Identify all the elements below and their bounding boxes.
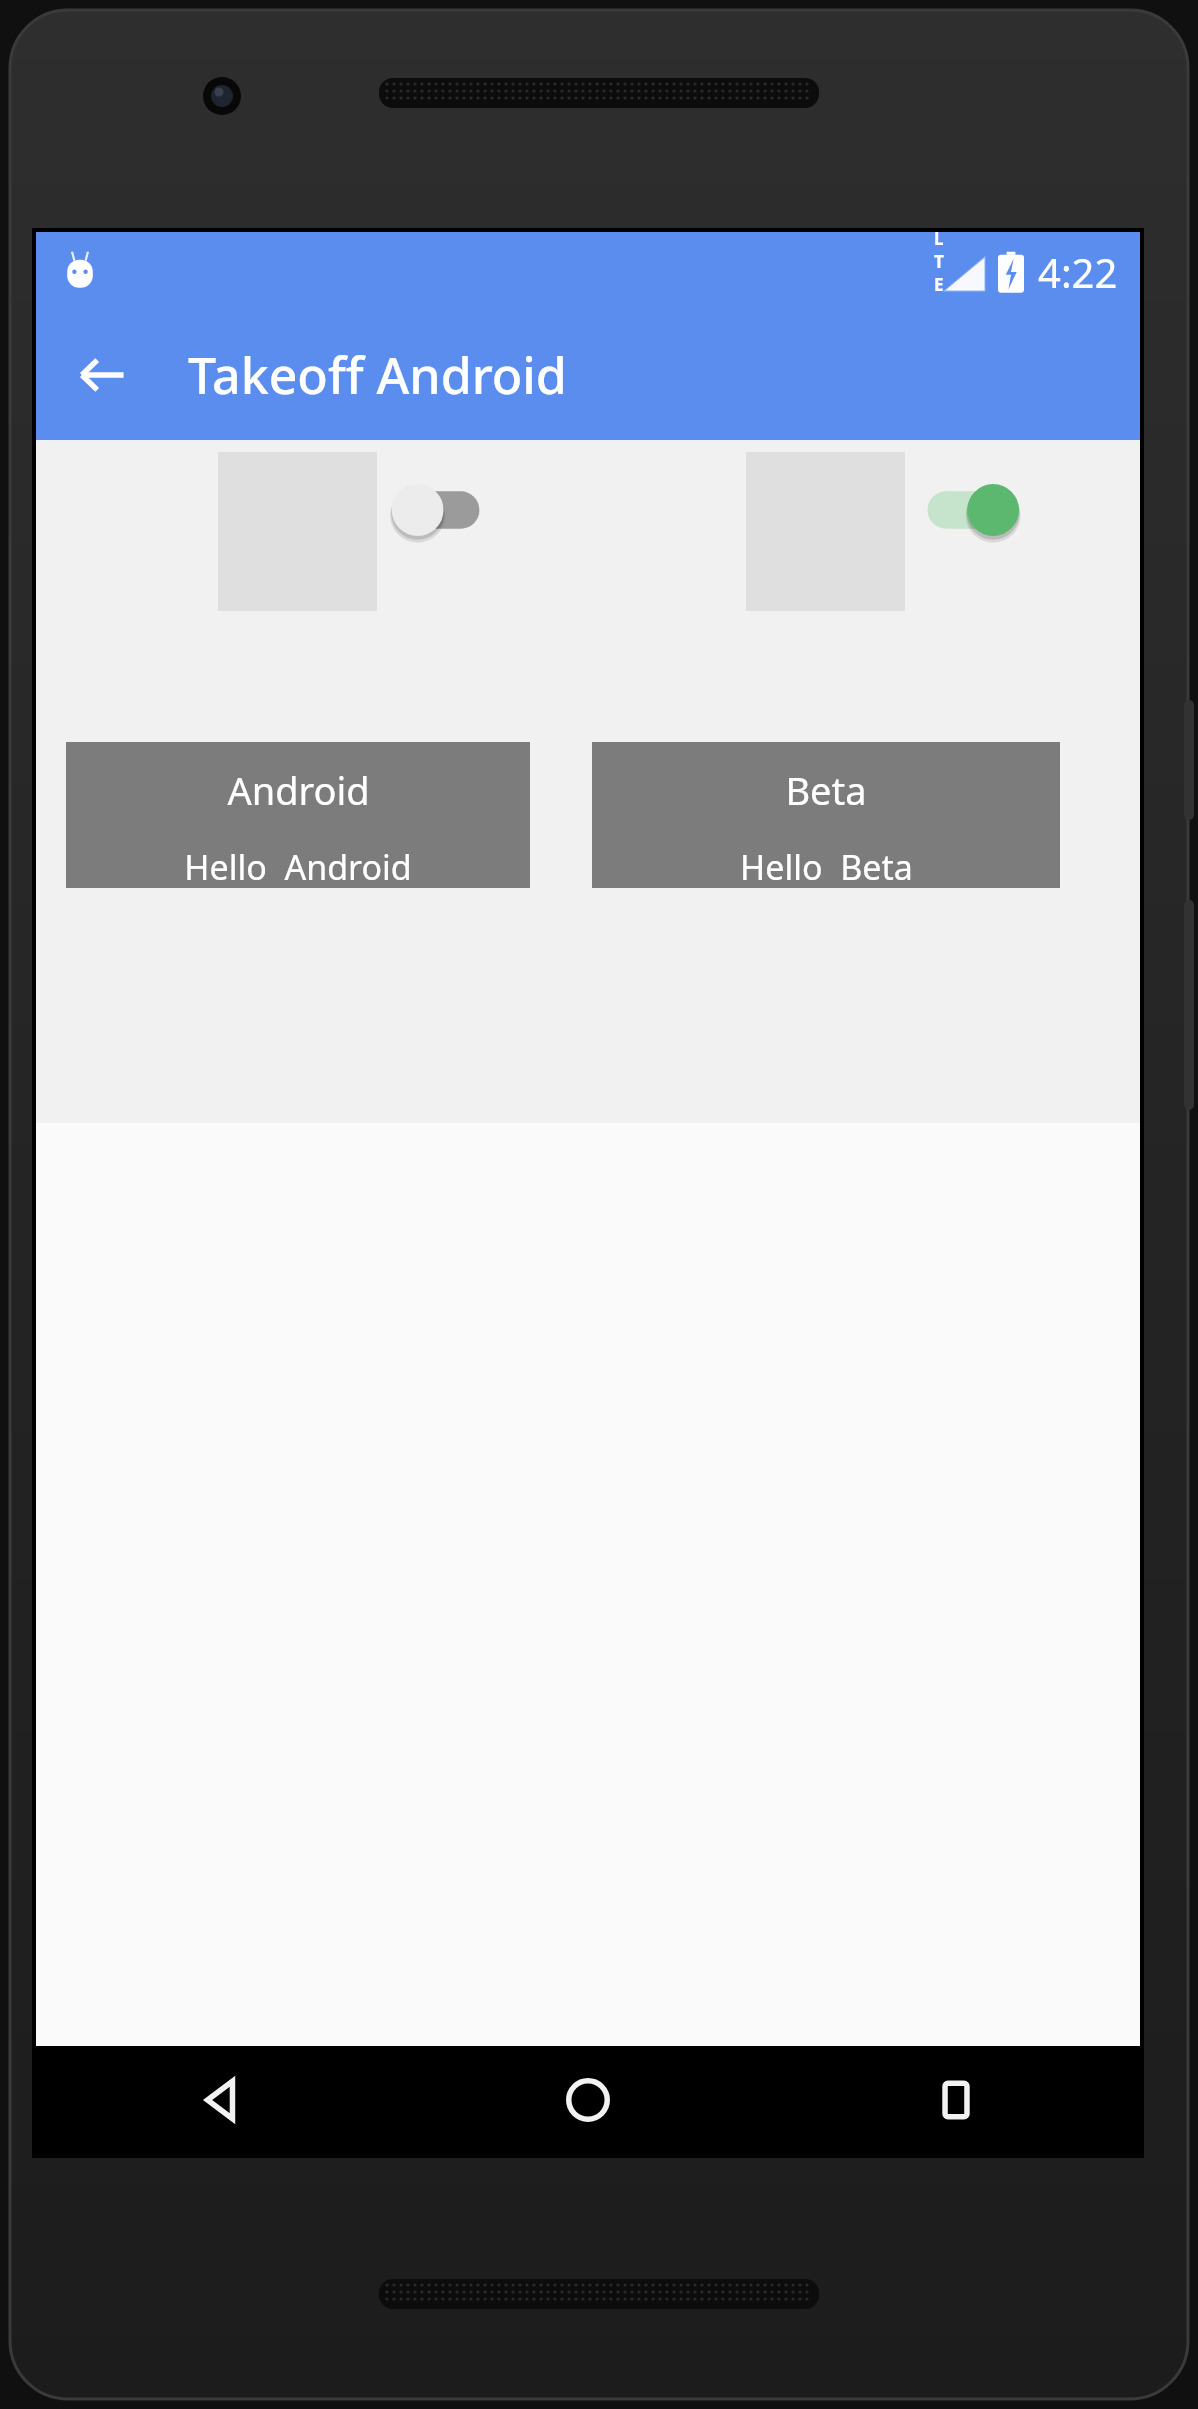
button[interactable]: Recent apps — [772, 2046, 1140, 2154]
button[interactable]: Beta — [592, 742, 1060, 888]
staticText: Takeoff Android — [188, 341, 567, 409]
button[interactable]: Toggle two, on — [921, 474, 1029, 546]
button[interactable]: Android — [66, 742, 530, 888]
button[interactable]: Navigate up — [60, 333, 144, 417]
staticText: Android — [227, 764, 370, 816]
button[interactable]: Toggle one, off — [393, 474, 501, 546]
staticText: 4:22 — [1038, 245, 1118, 299]
button[interactable]: Back — [36, 2046, 404, 2154]
button[interactable]: Home — [404, 2046, 772, 2154]
staticText: Hello Beta — [740, 844, 913, 888]
staticText: Beta — [785, 764, 867, 816]
staticText: Hello Android — [184, 844, 412, 888]
